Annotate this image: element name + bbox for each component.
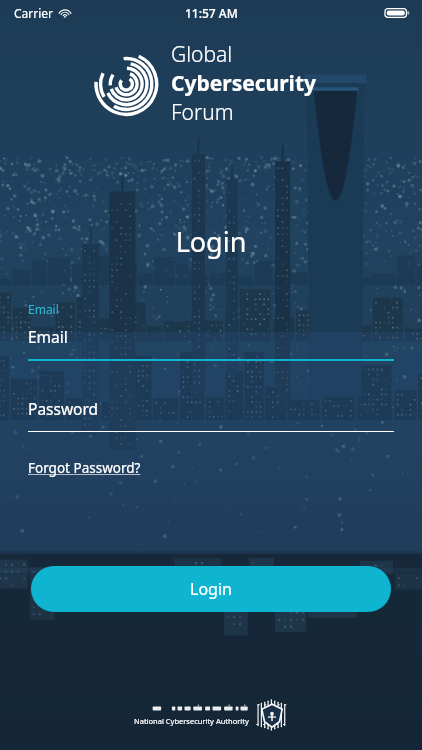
staticText: Password (28, 398, 99, 419)
staticText: Email (28, 326, 68, 347)
button[interactable]: Login (31, 566, 391, 612)
staticText: 11:57 AM (185, 5, 238, 21)
other: National Cybersecurity Authority (0, 698, 422, 732)
staticText: National Cybersecurity Authority (134, 716, 249, 726)
button[interactable]: Email (28, 326, 394, 361)
staticText: Forgot Password? (28, 459, 141, 477)
staticText: Login (0, 223, 422, 260)
staticText: Carrier (14, 5, 54, 21)
staticText: Login (190, 578, 232, 600)
staticText: Forum (171, 98, 234, 127)
button[interactable]: Forgot Password? (28, 459, 141, 477)
button[interactable]: Password (28, 398, 394, 432)
staticText: Cybersecurity (171, 69, 317, 98)
staticText: Global (171, 40, 233, 69)
staticText: Email (28, 301, 59, 317)
